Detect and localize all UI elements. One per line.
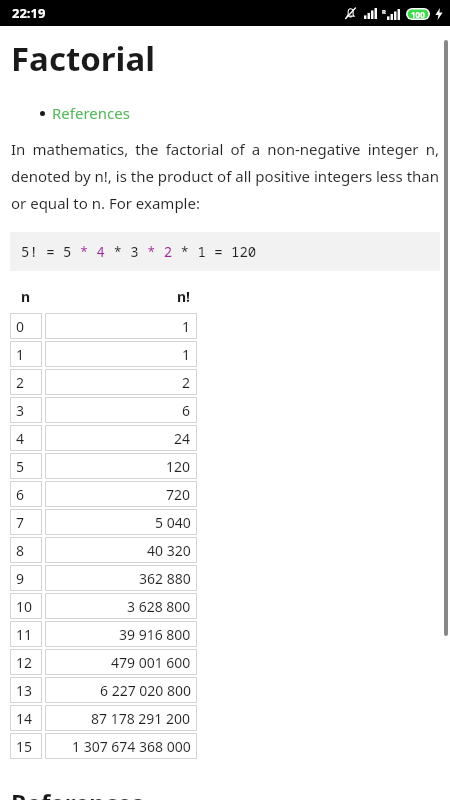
staticText: 40 320 xyxy=(147,541,191,560)
button[interactable]: 13 xyxy=(10,676,197,704)
button[interactable]: 10 xyxy=(10,592,197,620)
staticText: R xyxy=(382,8,386,16)
staticText: Factorial xyxy=(11,36,156,81)
button[interactable]: 7 xyxy=(10,508,197,536)
button[interactable]: 11 xyxy=(10,620,197,648)
staticText: 0 xyxy=(16,317,25,336)
button[interactable]: 9 xyxy=(10,564,197,592)
staticText: 1 xyxy=(16,345,25,364)
staticText: 1 xyxy=(182,345,191,364)
button[interactable]: 12 xyxy=(10,648,197,676)
staticText: 5! = 5 * 4 * 3 * 2 * 1 = 120 xyxy=(21,242,257,261)
staticText: 14 xyxy=(16,709,33,728)
staticText: 39 916 800 xyxy=(119,625,191,644)
staticText: 2 xyxy=(16,373,25,392)
staticText: References xyxy=(52,103,130,123)
staticText: 120 xyxy=(166,457,191,476)
staticText: In mathematics, the factorial of a non-n… xyxy=(11,139,439,214)
staticText: 100 xyxy=(411,9,425,20)
staticText: 7 xyxy=(16,513,25,532)
staticText: 6 xyxy=(182,401,191,420)
staticText: 10 xyxy=(16,597,33,616)
staticText: 15 xyxy=(16,737,33,756)
button[interactable]: 15 xyxy=(10,732,197,760)
staticText: 6 xyxy=(16,485,25,504)
staticText: 22:19 xyxy=(12,4,46,22)
staticText: 87 178 291 200 xyxy=(91,709,191,728)
button[interactable]: 1 xyxy=(10,340,197,368)
button[interactable]: 0 xyxy=(10,312,197,340)
button[interactable]: References xyxy=(40,103,130,123)
button[interactable]: 14 xyxy=(10,704,197,732)
staticText: 5 040 xyxy=(155,513,191,532)
staticText: 362 880 xyxy=(139,569,191,588)
button[interactable]: 2 xyxy=(10,368,197,396)
button[interactable]: 5 xyxy=(10,452,197,480)
staticText: 5 xyxy=(16,457,25,476)
staticText: 479 001 600 xyxy=(111,653,191,672)
staticText: 6 227 020 800 xyxy=(100,681,191,700)
staticText: 11 xyxy=(16,625,33,644)
staticText: 3 xyxy=(16,401,25,420)
staticText: 13 xyxy=(16,681,33,700)
button[interactable]: 3 xyxy=(10,396,197,424)
staticText: 3 628 800 xyxy=(127,597,191,616)
button[interactable]: 6 xyxy=(10,480,197,508)
button[interactable]: 4 xyxy=(10,424,197,452)
staticText: References xyxy=(11,786,144,800)
staticText: 9 xyxy=(16,569,25,588)
staticText: 4 xyxy=(16,429,25,448)
staticText: 12 xyxy=(16,653,33,672)
staticText: 1 xyxy=(182,317,191,336)
button[interactable]: 8 xyxy=(10,536,197,564)
staticText: 24 xyxy=(174,429,191,448)
staticText: 2 xyxy=(182,373,191,392)
staticText: 720 xyxy=(166,485,191,504)
staticText: n xyxy=(21,287,31,306)
staticText: 8 xyxy=(16,541,25,560)
staticText: n! xyxy=(177,287,191,306)
staticText: 1 307 674 368 000 xyxy=(72,737,191,756)
